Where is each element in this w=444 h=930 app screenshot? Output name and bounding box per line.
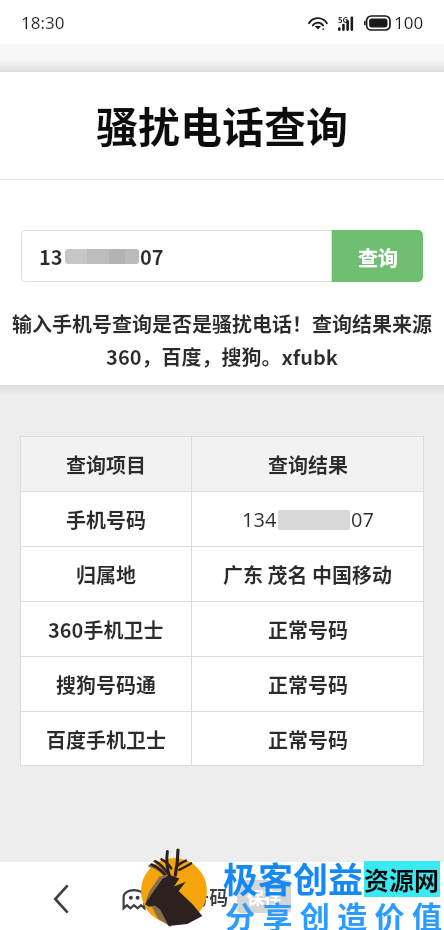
staticText: 07 [140,242,164,271]
staticText: 资源网 [364,861,440,897]
staticText: 手机号码 [66,505,146,534]
staticText: 保存 [247,884,281,909]
staticText: 查询 [358,243,398,272]
staticText: 13 [39,242,63,271]
staticText: 分享创造价值 [225,893,444,930]
staticText: 极客创益 [223,852,364,903]
staticText: 134 [242,506,277,533]
staticText: 输入手机号查询是否是骚扰电话！查询结果来源360，百度，搜狗。xfubk [7,309,437,370]
staticText: 2个号码 [160,883,229,911]
button[interactable]: 保存 [237,880,291,913]
button[interactable]: 查询 [332,230,423,282]
staticText: 广东 茂名 中国移动 [223,560,393,589]
staticText: 正常号码 [268,615,348,644]
staticText: 查询项目 [66,450,146,479]
staticText: 正常号码 [268,725,348,754]
staticText: 骚扰电话查询 [96,94,349,155]
staticText: 归属地 [76,560,136,589]
staticText: 07 [351,506,374,533]
staticText: 正常号码 [268,670,348,699]
staticText: 查询结果 [268,450,348,479]
staticText: 360手机卫士 [48,615,164,644]
button[interactable]: 13 [21,230,332,282]
staticText: 18:30 [21,11,65,34]
staticText: 百度手机卫士 [46,725,166,754]
staticText: 搜狗号码通 [56,670,156,699]
staticText: 5G [338,14,349,25]
staticText: 100 [394,11,424,34]
button[interactable]: Back [39,868,83,930]
button[interactable]: Messages [112,868,156,930]
